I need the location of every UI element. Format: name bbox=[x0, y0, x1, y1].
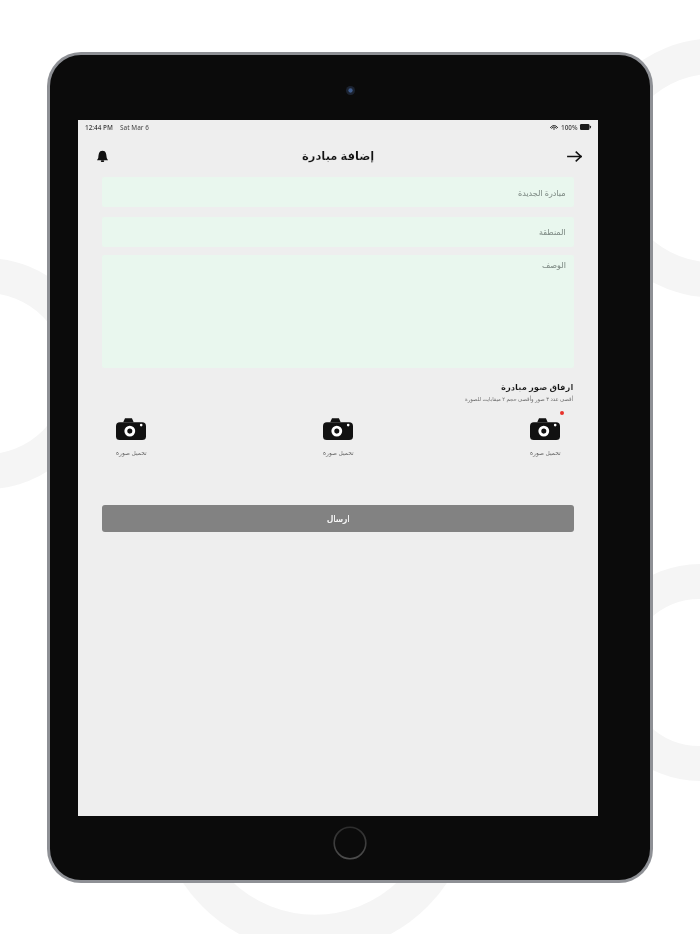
staticText: تحميل صورة bbox=[530, 449, 561, 457]
staticText: تحميل صورة bbox=[323, 449, 354, 457]
button[interactable]: ارسال bbox=[102, 505, 574, 532]
staticText: ارفاق صور مبادرة bbox=[501, 381, 574, 392]
staticText: 100% bbox=[561, 123, 578, 132]
staticText: المنطقة bbox=[539, 228, 566, 237]
button[interactable]: المنطقة bbox=[102, 217, 574, 247]
button[interactable]: Home bbox=[333, 826, 367, 860]
staticText: أقصى عدد ٣ صور وأقصى حجم ٢ ميقابايت للصو… bbox=[465, 395, 574, 402]
button[interactable]: Next bbox=[559, 141, 589, 171]
staticText: مبادرة الجديدة bbox=[518, 187, 566, 198]
staticText: ارسال bbox=[327, 514, 350, 524]
button[interactable]: Upload photo bbox=[309, 416, 367, 457]
staticText: إضافة مبادرة bbox=[302, 148, 375, 164]
staticText: تحميل صورة bbox=[116, 449, 147, 457]
button[interactable]: Upload photo bbox=[102, 416, 160, 457]
button[interactable]: Upload photo bbox=[516, 416, 574, 457]
button[interactable]: Notifications bbox=[87, 141, 117, 171]
staticText: 12:44 PM bbox=[85, 123, 113, 132]
staticText: الوصف bbox=[542, 261, 566, 270]
staticText: Sat Mar 6 bbox=[120, 123, 149, 132]
button[interactable]: مبادرة الجديدة bbox=[102, 177, 574, 207]
